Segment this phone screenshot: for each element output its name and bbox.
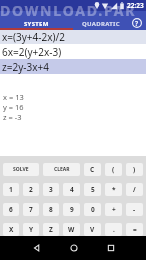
staticText: 22:23	[127, 1, 144, 10]
button[interactable]: 4	[63, 183, 80, 196]
staticText: 0	[91, 205, 95, 214]
button[interactable]: =	[126, 223, 143, 236]
button[interactable]: +	[105, 203, 122, 216]
staticText: W	[68, 225, 75, 234]
staticText: SOLVE	[13, 166, 29, 173]
staticText: 2	[29, 185, 33, 194]
button[interactable]: 6	[3, 203, 19, 216]
button[interactable]: *	[105, 183, 122, 196]
staticText: Z	[49, 225, 53, 234]
button[interactable]: SYSTEM	[0, 11, 73, 30]
button[interactable]: 6x=2(y+2x-3)	[0, 44, 146, 59]
staticText: -	[133, 205, 136, 214]
staticText: )	[133, 165, 136, 174]
button[interactable]: .	[105, 223, 122, 236]
staticText: 6x=2(y+2x-3)	[2, 45, 62, 59]
staticText: X	[9, 225, 14, 234]
staticText: +	[112, 205, 116, 214]
staticText: 8	[49, 205, 53, 214]
staticText: 6	[9, 205, 13, 214]
button[interactable]: X	[3, 223, 19, 236]
button[interactable]: CLEAR	[43, 163, 80, 176]
button[interactable]: 0	[84, 203, 101, 216]
button[interactable]	[18, 236, 55, 260]
staticText: 5	[91, 185, 95, 194]
staticText: ?	[135, 19, 139, 28]
button[interactable]: x=(3y+4-2x)/2	[0, 30, 146, 44]
staticText: z=2y-3x+4	[2, 60, 49, 74]
staticText: 9	[70, 205, 74, 214]
button[interactable]: 5	[84, 183, 101, 196]
staticText: 3	[49, 185, 53, 194]
staticText: x = 13	[3, 92, 24, 102]
staticText: x=(3y+4-2x)/2	[2, 30, 65, 44]
button[interactable]: (	[105, 163, 122, 176]
button[interactable]: Z	[43, 223, 59, 236]
staticText: SYSTEM	[24, 20, 49, 28]
button[interactable]: 8	[43, 203, 59, 216]
staticText: 1	[9, 185, 13, 194]
staticText: 7	[29, 205, 33, 214]
staticText: CLEAR	[54, 166, 70, 173]
staticText: y = 16	[3, 102, 24, 112]
button[interactable]: W	[63, 223, 80, 236]
staticText: .	[113, 225, 115, 234]
staticText: 4	[70, 185, 74, 194]
button[interactable]: QUADRATIC	[73, 11, 128, 30]
button[interactable]: 7	[23, 203, 39, 216]
button[interactable]: )	[126, 163, 143, 176]
button[interactable]: V	[84, 223, 101, 236]
button[interactable]: C	[84, 163, 101, 176]
button[interactable]: SOLVE	[3, 163, 39, 176]
button[interactable]: /	[126, 183, 143, 196]
staticText: =	[133, 225, 137, 234]
button[interactable]: 1	[3, 183, 19, 196]
staticText: (	[112, 165, 115, 174]
button[interactable]: ?	[128, 11, 146, 30]
button[interactable]: 9	[63, 203, 80, 216]
button[interactable]: 2	[23, 183, 39, 196]
button[interactable]	[92, 236, 129, 260]
button[interactable]: z=2y-3x+4	[0, 59, 146, 74]
staticText: C	[90, 165, 95, 174]
button[interactable]: 3	[43, 183, 59, 196]
button[interactable]: Y	[23, 223, 39, 236]
staticText: /	[133, 185, 136, 194]
staticText: Y	[29, 225, 34, 234]
button[interactable]: -	[126, 203, 143, 216]
staticText: *	[112, 185, 116, 194]
staticText: V	[90, 225, 95, 234]
staticText: z = -3	[3, 112, 22, 122]
button[interactable]	[55, 236, 92, 260]
staticText: QUADRATIC	[82, 20, 120, 28]
staticText: DOWNLOAD.PAR	[0, 1, 137, 20]
